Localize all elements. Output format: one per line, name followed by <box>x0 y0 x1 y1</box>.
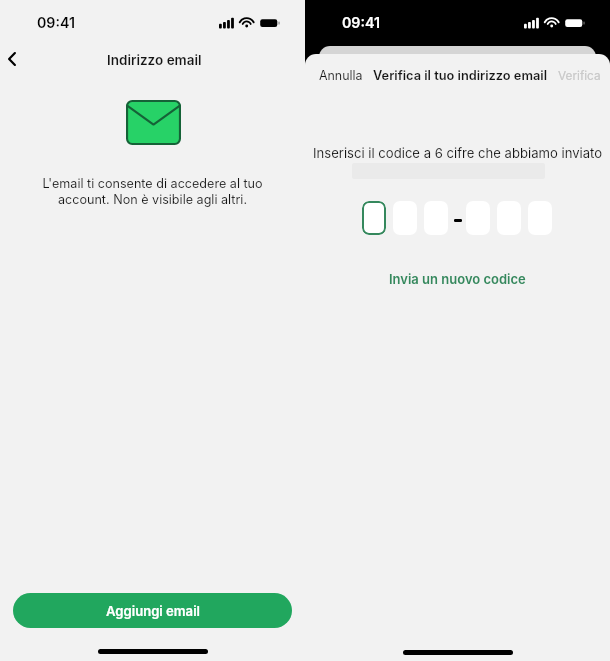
button[interactable]: Aggiungi email <box>13 593 292 628</box>
button[interactable]: Verifica <box>558 69 601 83</box>
staticText: Aggiungi email <box>106 603 200 619</box>
staticText: Invia un nuovo codice <box>389 271 526 287</box>
staticText: Verifica <box>558 69 601 83</box>
button[interactable]: Annulla <box>319 68 363 83</box>
staticText: 09:41 <box>37 14 75 31</box>
button[interactable] <box>362 201 386 235</box>
staticText: Indirizzo email <box>107 52 202 68</box>
staticText: Inserisci il codice a 6 cifre che abbiam… <box>313 145 603 161</box>
staticText: Verifica il tuo indirizzo email <box>373 68 548 83</box>
staticText: L'email ti consente di accedere al tuo a… <box>22 176 283 207</box>
staticText: Annulla <box>319 68 363 83</box>
button[interactable]: Invia un nuovo codice <box>389 271 526 287</box>
button[interactable]: Back <box>0 45 26 73</box>
staticText: 09:41 <box>342 14 380 31</box>
